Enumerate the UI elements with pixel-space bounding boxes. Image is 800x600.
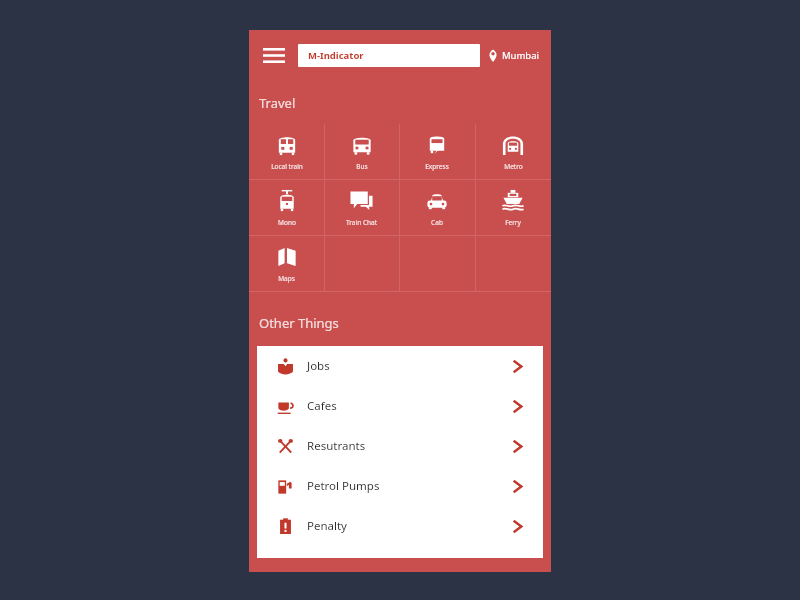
staticText: Resutrants xyxy=(307,438,366,454)
staticText: Bus xyxy=(356,162,368,171)
staticText: Mono xyxy=(278,218,296,227)
staticText: Travel xyxy=(259,94,296,112)
staticText: Ferry xyxy=(505,218,521,227)
staticText: Other Things xyxy=(259,314,339,332)
staticText: Express xyxy=(425,162,449,171)
staticText: Local train xyxy=(271,162,303,171)
staticText: Metro xyxy=(504,162,523,171)
button[interactable]: Mono xyxy=(249,180,324,235)
staticText: Train Chat xyxy=(346,218,377,227)
button[interactable]: Metro xyxy=(475,124,551,179)
button[interactable]: Cab xyxy=(399,180,475,235)
staticText: Petrol Pumps xyxy=(307,478,380,494)
button[interactable]: Petrol Pumps xyxy=(257,466,543,506)
button[interactable]: Train Chat xyxy=(324,180,399,235)
staticText: Jobs xyxy=(307,358,330,374)
button[interactable]: M-Indicator xyxy=(298,44,480,67)
staticText: Cafes xyxy=(307,398,337,414)
button[interactable]: Local train xyxy=(249,124,324,179)
button[interactable]: Jobs xyxy=(257,346,543,386)
staticText: Maps xyxy=(278,274,295,283)
staticText: M-Indicator xyxy=(308,49,364,62)
staticText: Cab xyxy=(431,218,443,227)
button[interactable]: Penalty xyxy=(257,506,543,546)
button[interactable]: Menu xyxy=(259,40,289,70)
button[interactable]: Cafes xyxy=(257,386,543,426)
button[interactable]: Mumbai xyxy=(488,49,541,62)
button[interactable]: Ferry xyxy=(475,180,551,235)
staticText: Penalty xyxy=(307,518,347,534)
button[interactable]: Resutrants xyxy=(257,426,543,466)
button[interactable]: Bus xyxy=(324,124,399,179)
staticText: Mumbai xyxy=(502,49,539,62)
button[interactable]: Maps xyxy=(249,236,324,291)
button[interactable]: Express xyxy=(399,124,475,179)
